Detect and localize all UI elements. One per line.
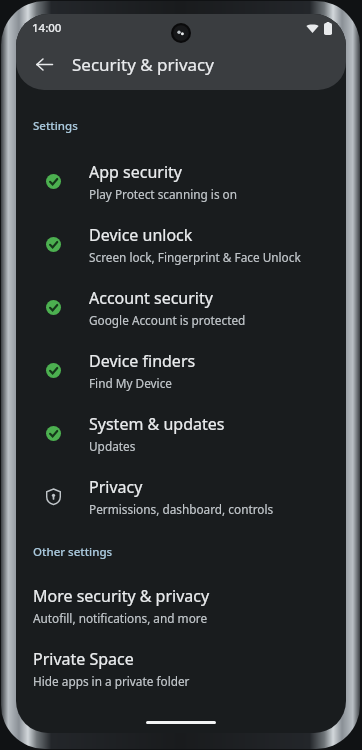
staticText: Device finders: [89, 350, 196, 372]
staticText: Privacy: [89, 476, 143, 498]
staticText: Device unlock: [89, 224, 193, 246]
button[interactable]: Device unlock: [16, 213, 346, 276]
staticText: Autofill, notifications, and more: [33, 610, 208, 626]
button[interactable]: Private Space: [16, 637, 346, 700]
staticText: Settings: [33, 118, 78, 134]
staticText: Security & privacy: [72, 53, 214, 76]
staticText: Other settings: [33, 544, 113, 560]
staticText: More security & privacy: [33, 585, 210, 607]
staticText: Find My Device: [89, 375, 172, 391]
staticText: System & updates: [89, 413, 225, 435]
staticText: App security: [89, 161, 182, 183]
staticText: Permissions, dashboard, controls: [89, 501, 274, 517]
staticText: Private Space: [33, 648, 134, 670]
staticText: Screen lock, Fingerprint & Face Unlock: [89, 249, 301, 265]
button[interactable]: Privacy: [16, 465, 346, 528]
button[interactable]: Account security: [16, 276, 346, 339]
staticText: Account security: [89, 287, 213, 309]
staticText: 14:00: [32, 20, 62, 36]
staticText: Google Account is protected: [89, 312, 246, 328]
button[interactable]: App security: [16, 150, 346, 213]
staticText: Updates: [89, 438, 136, 454]
button[interactable]: Device finders: [16, 339, 346, 402]
button[interactable]: Back: [24, 44, 64, 84]
button[interactable]: System & updates: [16, 402, 346, 465]
button[interactable]: More security & privacy: [16, 574, 346, 637]
staticText: Play Protect scanning is on: [89, 186, 238, 202]
staticText: Hide apps in a private folder: [33, 673, 190, 689]
